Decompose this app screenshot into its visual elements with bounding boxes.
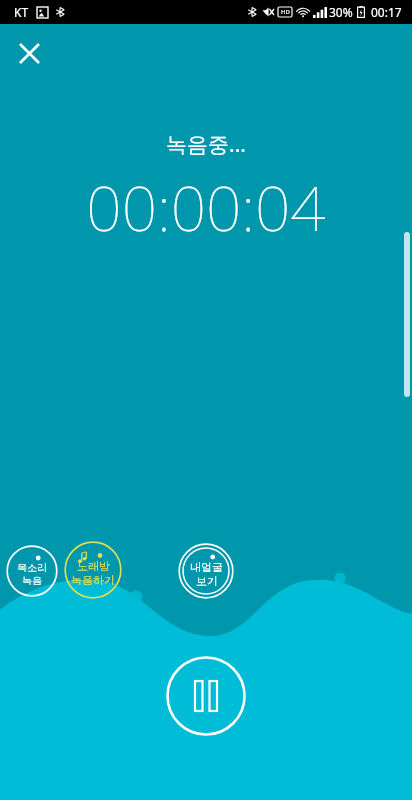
staticText: 보기: [196, 574, 218, 588]
button[interactable]: Pause: [166, 656, 246, 736]
staticText: 30%: [329, 4, 353, 20]
staticText: 노래방: [77, 559, 110, 573]
staticText: 내얼굴: [190, 560, 223, 574]
staticText: 녹음중...: [166, 130, 246, 159]
button[interactable]: Close: [10, 34, 48, 72]
staticText: 목소리: [17, 561, 47, 574]
staticText: 00:00:04: [86, 165, 326, 249]
staticText: HD: [281, 8, 290, 16]
staticText: KT: [14, 4, 29, 20]
button[interactable]: 내얼굴 보기: [178, 543, 234, 599]
staticText: 00:17: [371, 4, 402, 20]
staticText: 녹음: [22, 574, 42, 587]
staticText: 녹음하기: [71, 573, 115, 587]
button[interactable]: 노래방 녹음하기: [64, 541, 122, 599]
button[interactable]: 목소리 녹음: [6, 545, 58, 597]
